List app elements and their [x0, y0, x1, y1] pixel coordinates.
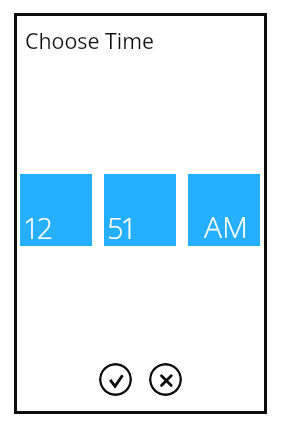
- button[interactable]: AM: [188, 174, 260, 246]
- staticText: 51: [107, 208, 135, 247]
- button[interactable]: 51: [104, 174, 176, 246]
- button[interactable]: 12: [20, 174, 92, 246]
- button[interactable]: Confirm: [99, 363, 132, 396]
- staticText: 12: [23, 208, 51, 247]
- staticText: Choose Time: [25, 26, 155, 55]
- button[interactable]: Cancel: [149, 363, 182, 396]
- staticText: AM: [204, 206, 248, 247]
